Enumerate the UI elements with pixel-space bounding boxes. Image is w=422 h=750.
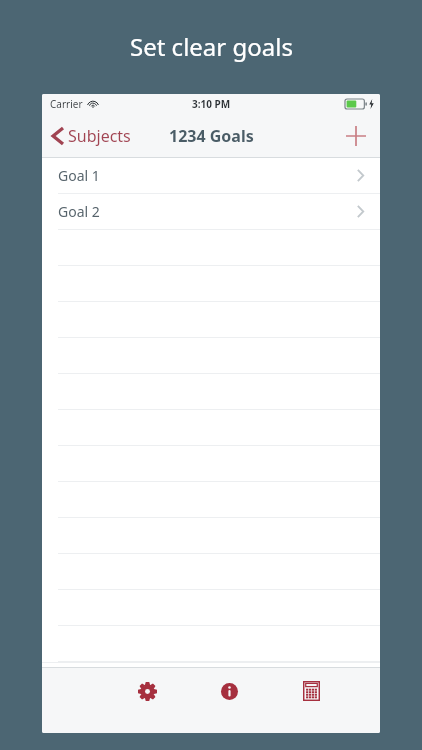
staticText: 3:10 PM: [192, 97, 231, 111]
staticText: Goal 2: [58, 202, 100, 221]
button[interactable]: Calculator: [290, 670, 332, 712]
staticText: 1234 Goals: [169, 125, 254, 147]
staticText: Subjects: [68, 125, 131, 147]
button[interactable]: Goal 1: [42, 158, 380, 193]
staticText: Set clear goals: [130, 30, 293, 63]
button[interactable]: Settings: [126, 670, 168, 712]
button[interactable]: Add goal: [332, 118, 380, 154]
button[interactable]: Subjects: [42, 119, 141, 153]
staticText: Carrier: [50, 97, 83, 111]
button[interactable]: Information: [208, 670, 250, 712]
button[interactable]: Goal 2: [42, 194, 380, 229]
staticText: Goal 1: [58, 166, 100, 185]
